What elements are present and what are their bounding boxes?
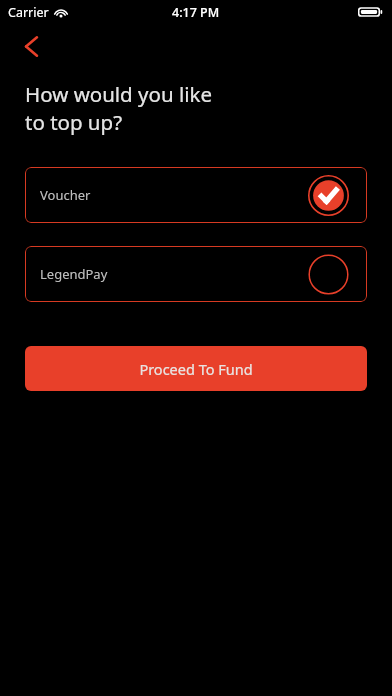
staticText: Carrier: [8, 4, 49, 21]
button[interactable]: Voucher: [25, 167, 367, 223]
staticText: Voucher: [40, 186, 91, 204]
button[interactable]: LegendPay: [25, 246, 367, 302]
staticText: Proceed To Fund: [139, 359, 253, 379]
staticText: 4:17 PM: [172, 4, 220, 21]
staticText: How would you like: [25, 80, 212, 108]
staticText: to top up?: [25, 108, 123, 136]
staticText: LegendPay: [40, 265, 108, 283]
button[interactable]: Back: [14, 29, 48, 63]
button[interactable]: Proceed To Fund: [25, 346, 367, 391]
